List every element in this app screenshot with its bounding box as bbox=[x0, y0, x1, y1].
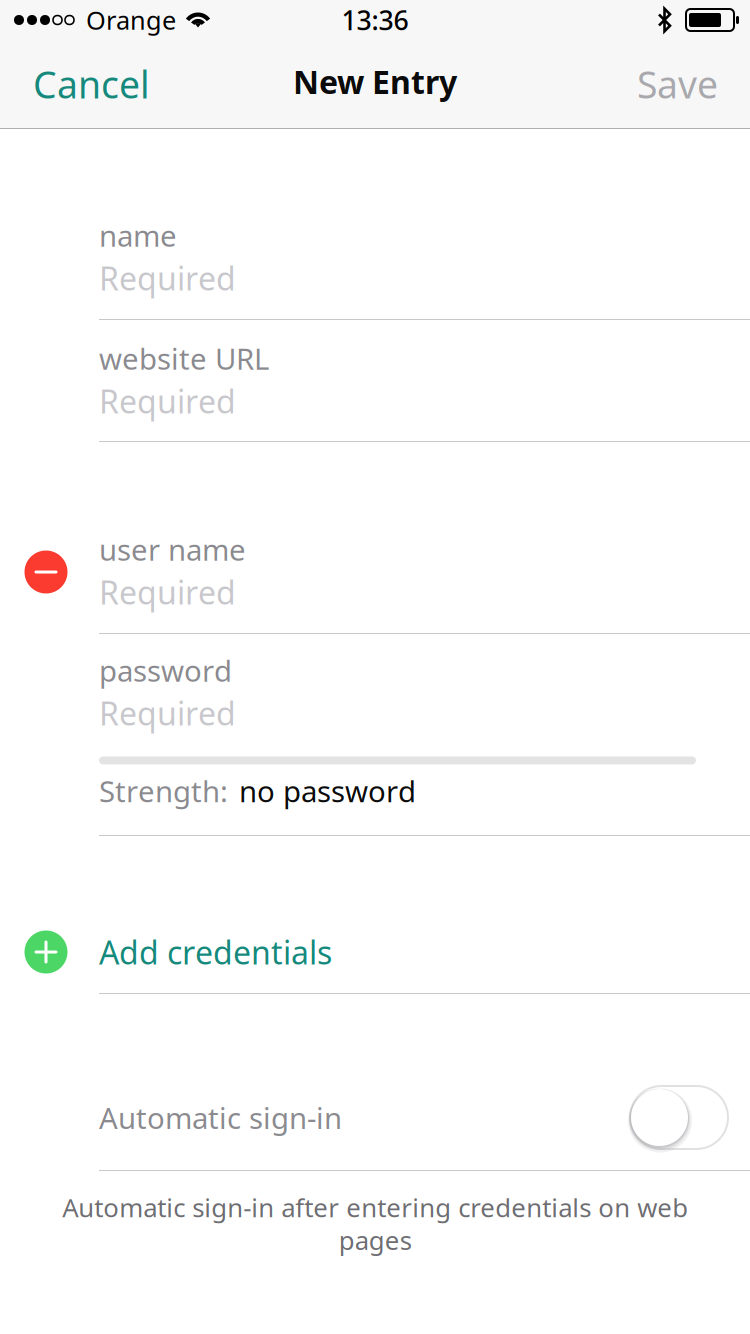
button[interactable]: Remove credentials bbox=[0, 511, 99, 633]
staticText: Strength: bbox=[99, 771, 228, 810]
staticText: New Entry bbox=[293, 61, 457, 102]
staticText: website URL bbox=[99, 339, 269, 378]
staticText: Save bbox=[637, 59, 718, 109]
button[interactable]: Save bbox=[619, 40, 750, 128]
staticText: no password bbox=[239, 771, 416, 810]
staticText: user name bbox=[99, 530, 246, 569]
staticText: password bbox=[99, 651, 232, 690]
staticText: Required bbox=[99, 692, 236, 734]
staticText: name bbox=[99, 216, 177, 255]
staticText: Add credentials bbox=[99, 931, 332, 973]
staticText: Required bbox=[99, 571, 236, 613]
button[interactable]: Automatic sign-in bbox=[630, 1065, 728, 1170]
staticText: Required bbox=[99, 257, 236, 299]
staticText: Cancel bbox=[33, 59, 150, 109]
staticText: Orange bbox=[86, 3, 176, 37]
staticText: 13:36 bbox=[341, 2, 408, 38]
staticText: Required bbox=[99, 380, 236, 422]
staticText: Automatic sign-in bbox=[99, 1098, 342, 1137]
button[interactable]: Add credentials bbox=[0, 911, 750, 993]
button[interactable]: Cancel bbox=[0, 40, 168, 128]
staticText: Automatic sign-in after entering credent… bbox=[62, 1191, 688, 1256]
